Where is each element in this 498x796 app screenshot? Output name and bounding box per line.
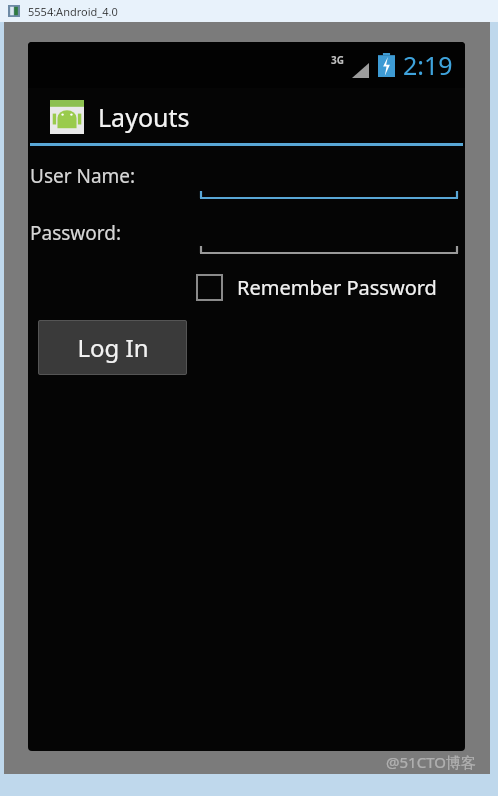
staticText: Layouts <box>98 100 190 134</box>
staticText: Log In <box>77 331 149 364</box>
button[interactable]: Log In <box>38 320 187 375</box>
button[interactable]: Remember Password <box>196 270 437 304</box>
staticText: 2:19 <box>403 48 453 82</box>
button[interactable] <box>200 228 458 254</box>
button[interactable] <box>200 173 458 199</box>
staticText: @51CTO博客 <box>386 752 476 772</box>
staticText: 3G <box>331 53 344 67</box>
staticText: Remember Password <box>237 274 437 301</box>
staticText: 5554:Android_4.0 <box>28 4 118 19</box>
staticText: User Name: <box>30 163 136 189</box>
staticText: Password: <box>30 220 122 246</box>
